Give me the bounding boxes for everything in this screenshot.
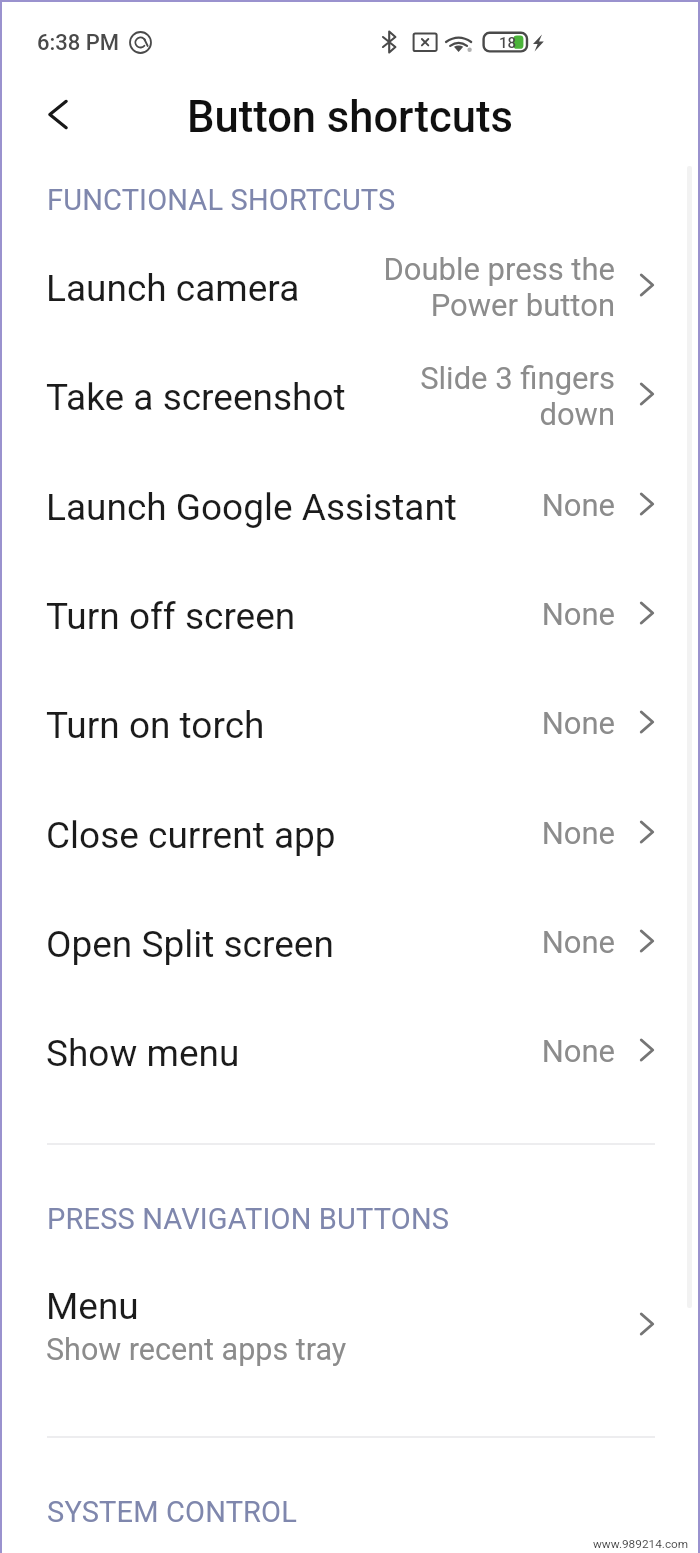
- button[interactable]: Open Split screen: [0, 890, 700, 999]
- button[interactable]: Back: [36, 94, 80, 138]
- button[interactable]: Launch Google Assistant: [0, 453, 700, 562]
- staticText: Close current app: [46, 814, 336, 857]
- button[interactable]: Launch camera: [0, 234, 700, 343]
- button[interactable]: Menu: [0, 1266, 700, 1386]
- staticText: SYSTEM CONTROL: [47, 1495, 298, 1529]
- staticText: Show menu: [46, 1032, 240, 1075]
- staticText: FUNCTIONAL SHORTCUTS: [47, 183, 396, 217]
- button[interactable]: Show menu: [0, 999, 700, 1108]
- staticText: None: [541, 596, 615, 632]
- button[interactable]: Turn on torch: [0, 671, 700, 780]
- staticText: Power button: [430, 287, 615, 323]
- staticText: down: [539, 396, 615, 432]
- staticText: Turn on torch: [46, 704, 265, 747]
- button[interactable]: Turn off screen: [0, 562, 700, 671]
- staticText: None: [541, 815, 615, 851]
- staticText: None: [541, 705, 615, 741]
- staticText: www.989214.com: [593, 1537, 689, 1551]
- staticText: Button shortcuts: [187, 92, 513, 143]
- staticText: Take a screenshot: [46, 376, 346, 419]
- staticText: PRESS NAVIGATION BUTTONS: [47, 1202, 450, 1236]
- staticText: 6:38 PM: [37, 30, 120, 56]
- staticText: Launch Google Assistant: [46, 486, 457, 529]
- staticText: Show recent apps tray: [46, 1332, 347, 1368]
- staticText: Launch camera: [46, 267, 300, 310]
- staticText: None: [541, 487, 615, 523]
- staticText: Open Split screen: [46, 923, 334, 966]
- button[interactable]: Take a screenshot: [0, 343, 700, 452]
- staticText: Double press the: [383, 251, 615, 287]
- button[interactable]: Close current app: [0, 781, 700, 890]
- staticText: 18: [499, 34, 517, 52]
- staticText: Slide 3 fingers: [420, 360, 615, 396]
- staticText: None: [541, 924, 615, 960]
- staticText: Turn off screen: [46, 595, 296, 638]
- staticText: None: [541, 1033, 615, 1069]
- staticText: Menu: [46, 1285, 139, 1328]
